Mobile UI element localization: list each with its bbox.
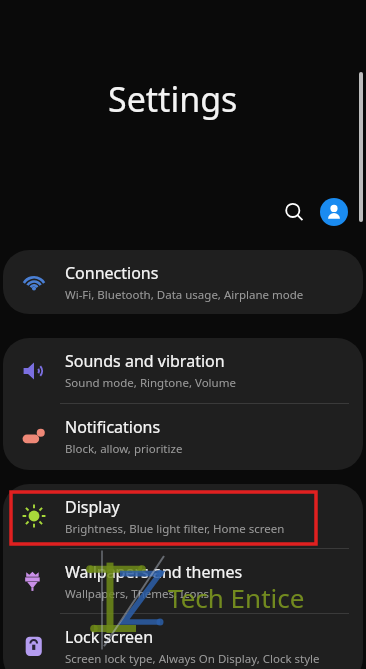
button[interactable]: Wallpapers and themes xyxy=(3,549,363,613)
staticText: Screen lock type, Always On Display, Clo… xyxy=(65,651,320,667)
staticText: Tech Entice xyxy=(168,580,305,615)
button[interactable]: Display xyxy=(3,484,363,548)
button[interactable]: Notifications xyxy=(3,404,363,469)
button[interactable]: Account xyxy=(320,198,348,226)
staticText: Wi-Fi, Bluetooth, Data usage, Airplane m… xyxy=(65,287,304,303)
button[interactable]: Connections xyxy=(3,250,363,314)
staticText: Wallpapers and themes xyxy=(65,561,243,583)
staticText: Lock screen xyxy=(65,626,154,648)
staticText: Sound mode, Ringtone, Volume xyxy=(65,375,236,391)
staticText: Wallpapers, Themes, Icons xyxy=(65,586,210,602)
button[interactable]: Sounds and vibration xyxy=(3,338,363,403)
button[interactable]: Lock screen xyxy=(3,614,363,669)
staticText: Notifications xyxy=(65,416,161,438)
staticText: Block, allow, prioritize xyxy=(65,441,183,457)
staticText: Sounds and vibration xyxy=(65,350,225,372)
staticText: Settings xyxy=(108,76,238,122)
button[interactable]: Search xyxy=(278,196,310,228)
staticText: Connections xyxy=(65,262,159,284)
staticText: Display xyxy=(65,496,120,518)
staticText: Brightness, Blue light filter, Home scre… xyxy=(65,521,285,537)
